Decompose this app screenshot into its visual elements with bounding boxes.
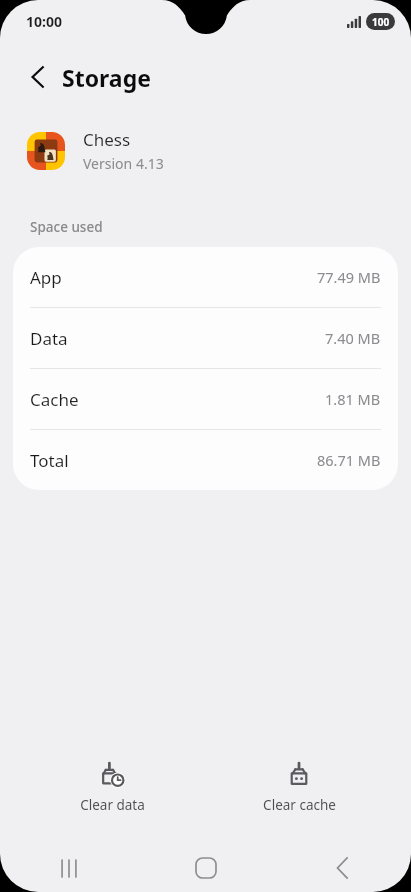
button[interactable]: Home [137, 844, 274, 892]
staticText: Space used [30, 218, 103, 236]
staticText: Data [30, 327, 68, 350]
button[interactable]: Back [274, 844, 411, 892]
button[interactable]: App [13, 247, 398, 307]
staticText: 7.40 MB [325, 328, 381, 348]
staticText: 1.81 MB [325, 389, 381, 409]
button[interactable]: Back [18, 57, 58, 97]
staticText: App [30, 266, 62, 289]
button[interactable]: Clear cache [224, 754, 374, 822]
staticText: 100 [372, 15, 390, 29]
button[interactable]: Cache [13, 369, 398, 429]
staticText: 86.71 MB [317, 450, 381, 470]
staticText: 77.49 MB [317, 267, 381, 287]
staticText: Total [30, 449, 69, 472]
staticText: 10:00 [26, 12, 62, 31]
button[interactable]: Recent apps [0, 844, 137, 892]
button[interactable]: Data [13, 308, 398, 368]
staticText: Chess [83, 128, 131, 151]
button[interactable]: Clear data [37, 754, 187, 822]
staticText: Clear cache [263, 796, 336, 814]
staticText: Storage [62, 62, 151, 93]
staticText: Version 4.13 [83, 154, 164, 173]
button[interactable]: Total [13, 430, 398, 490]
staticText: Clear data [80, 796, 145, 814]
staticText: Cache [30, 388, 79, 411]
